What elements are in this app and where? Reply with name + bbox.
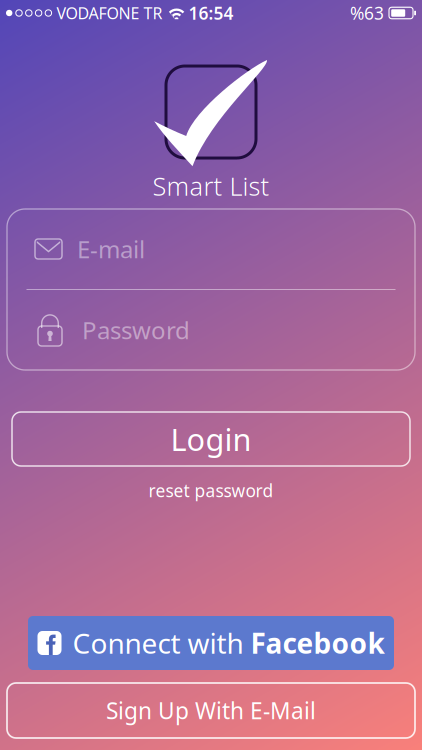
staticText: Sign Up With E-Mail bbox=[106, 695, 316, 725]
staticText: Smart List bbox=[152, 169, 269, 203]
button[interactable]: Login bbox=[12, 412, 410, 466]
staticText: 16:54 bbox=[188, 1, 233, 24]
staticText: E-mail bbox=[77, 233, 145, 265]
staticText: %63 bbox=[350, 1, 384, 24]
button[interactable]: reset password bbox=[138, 474, 283, 507]
button[interactable]: Sign Up With E-Mail bbox=[7, 683, 415, 738]
staticText: Connect with Facebook bbox=[72, 624, 384, 662]
staticText: reset password bbox=[148, 479, 273, 502]
staticText: Login bbox=[170, 419, 251, 459]
staticText: Password bbox=[82, 314, 190, 346]
button[interactable]: Connect with Facebook bbox=[28, 616, 394, 670]
staticText: VODAFONE TR bbox=[57, 2, 163, 24]
